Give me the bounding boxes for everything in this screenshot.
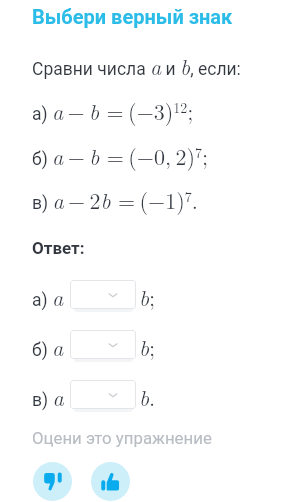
button[interactable]: Не нравится bbox=[33, 462, 72, 501]
staticText: б) a − b = (−0, 2)7; bbox=[32, 140, 209, 171]
staticText: b; bbox=[139, 281, 156, 312]
staticText: в) a − 2b = (−1)7. bbox=[32, 184, 198, 215]
button[interactable]: Выбрать знак bbox=[70, 280, 136, 312]
button[interactable]: Выбрать знак bbox=[70, 330, 136, 362]
staticText: Ответ: bbox=[32, 238, 85, 258]
staticText: Сравни числа a и b, если: bbox=[32, 50, 241, 81]
staticText: b; bbox=[139, 331, 156, 362]
staticText: в) a bbox=[32, 381, 64, 412]
staticText: а) a bbox=[32, 281, 64, 312]
button[interactable]: Нравится bbox=[91, 462, 130, 501]
staticText: а) a − b = (−3)12; bbox=[32, 95, 194, 126]
staticText: б) a bbox=[32, 331, 64, 362]
button[interactable]: Выбрать знак bbox=[70, 380, 136, 412]
staticText: Оцени это упражнение bbox=[32, 428, 212, 448]
staticText: Выбери верный знак bbox=[32, 5, 233, 28]
staticText: b. bbox=[139, 381, 156, 412]
